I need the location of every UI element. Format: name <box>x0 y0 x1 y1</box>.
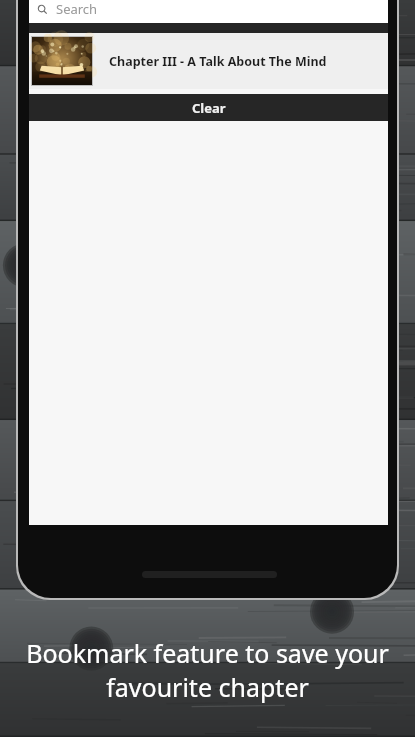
button[interactable]: Clear <box>29 94 388 121</box>
staticText: Clear <box>192 99 226 117</box>
staticText: Chapter III - A Talk About The Mind <box>109 53 327 70</box>
button[interactable]: Chapter III - A Talk About The Mind <box>29 33 388 89</box>
staticText: Search <box>56 0 98 18</box>
button[interactable]: Search <box>29 0 388 23</box>
staticText: Bookmark feature to save your favourite … <box>12 636 403 704</box>
